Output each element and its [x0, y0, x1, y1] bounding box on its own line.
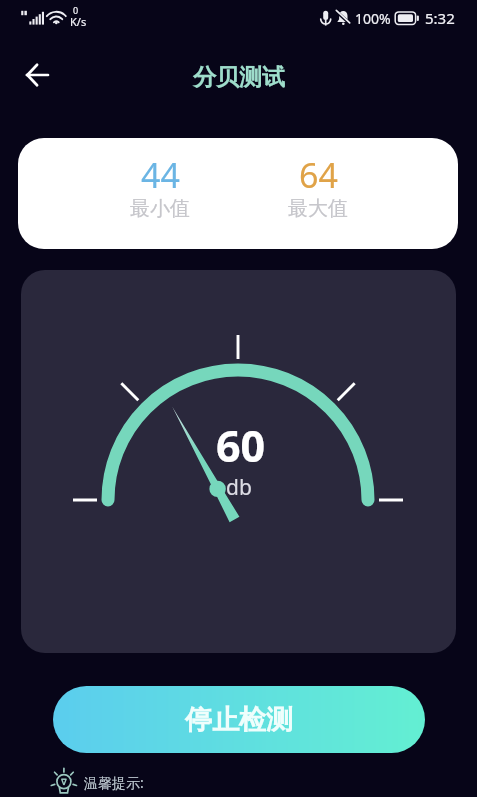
button[interactable]: 停止检测	[53, 686, 425, 753]
staticText: K/s	[70, 14, 87, 29]
button[interactable]: Tip	[48, 763, 82, 797]
staticText: 温馨提示:	[84, 773, 144, 792]
button[interactable]: Back	[20, 57, 56, 93]
staticText: 0	[73, 4, 79, 16]
staticText: 64	[299, 152, 338, 198]
staticText: 100%	[355, 9, 391, 28]
staticText: 60	[216, 416, 266, 475]
staticText: 最大值	[288, 196, 348, 221]
staticText: 最小值	[130, 196, 190, 221]
staticText: 分贝测试	[193, 63, 285, 92]
staticText: 停止检测	[185, 703, 293, 737]
staticText: 5:32	[425, 8, 455, 28]
staticText: db	[226, 473, 252, 502]
staticText: 44	[141, 152, 180, 198]
